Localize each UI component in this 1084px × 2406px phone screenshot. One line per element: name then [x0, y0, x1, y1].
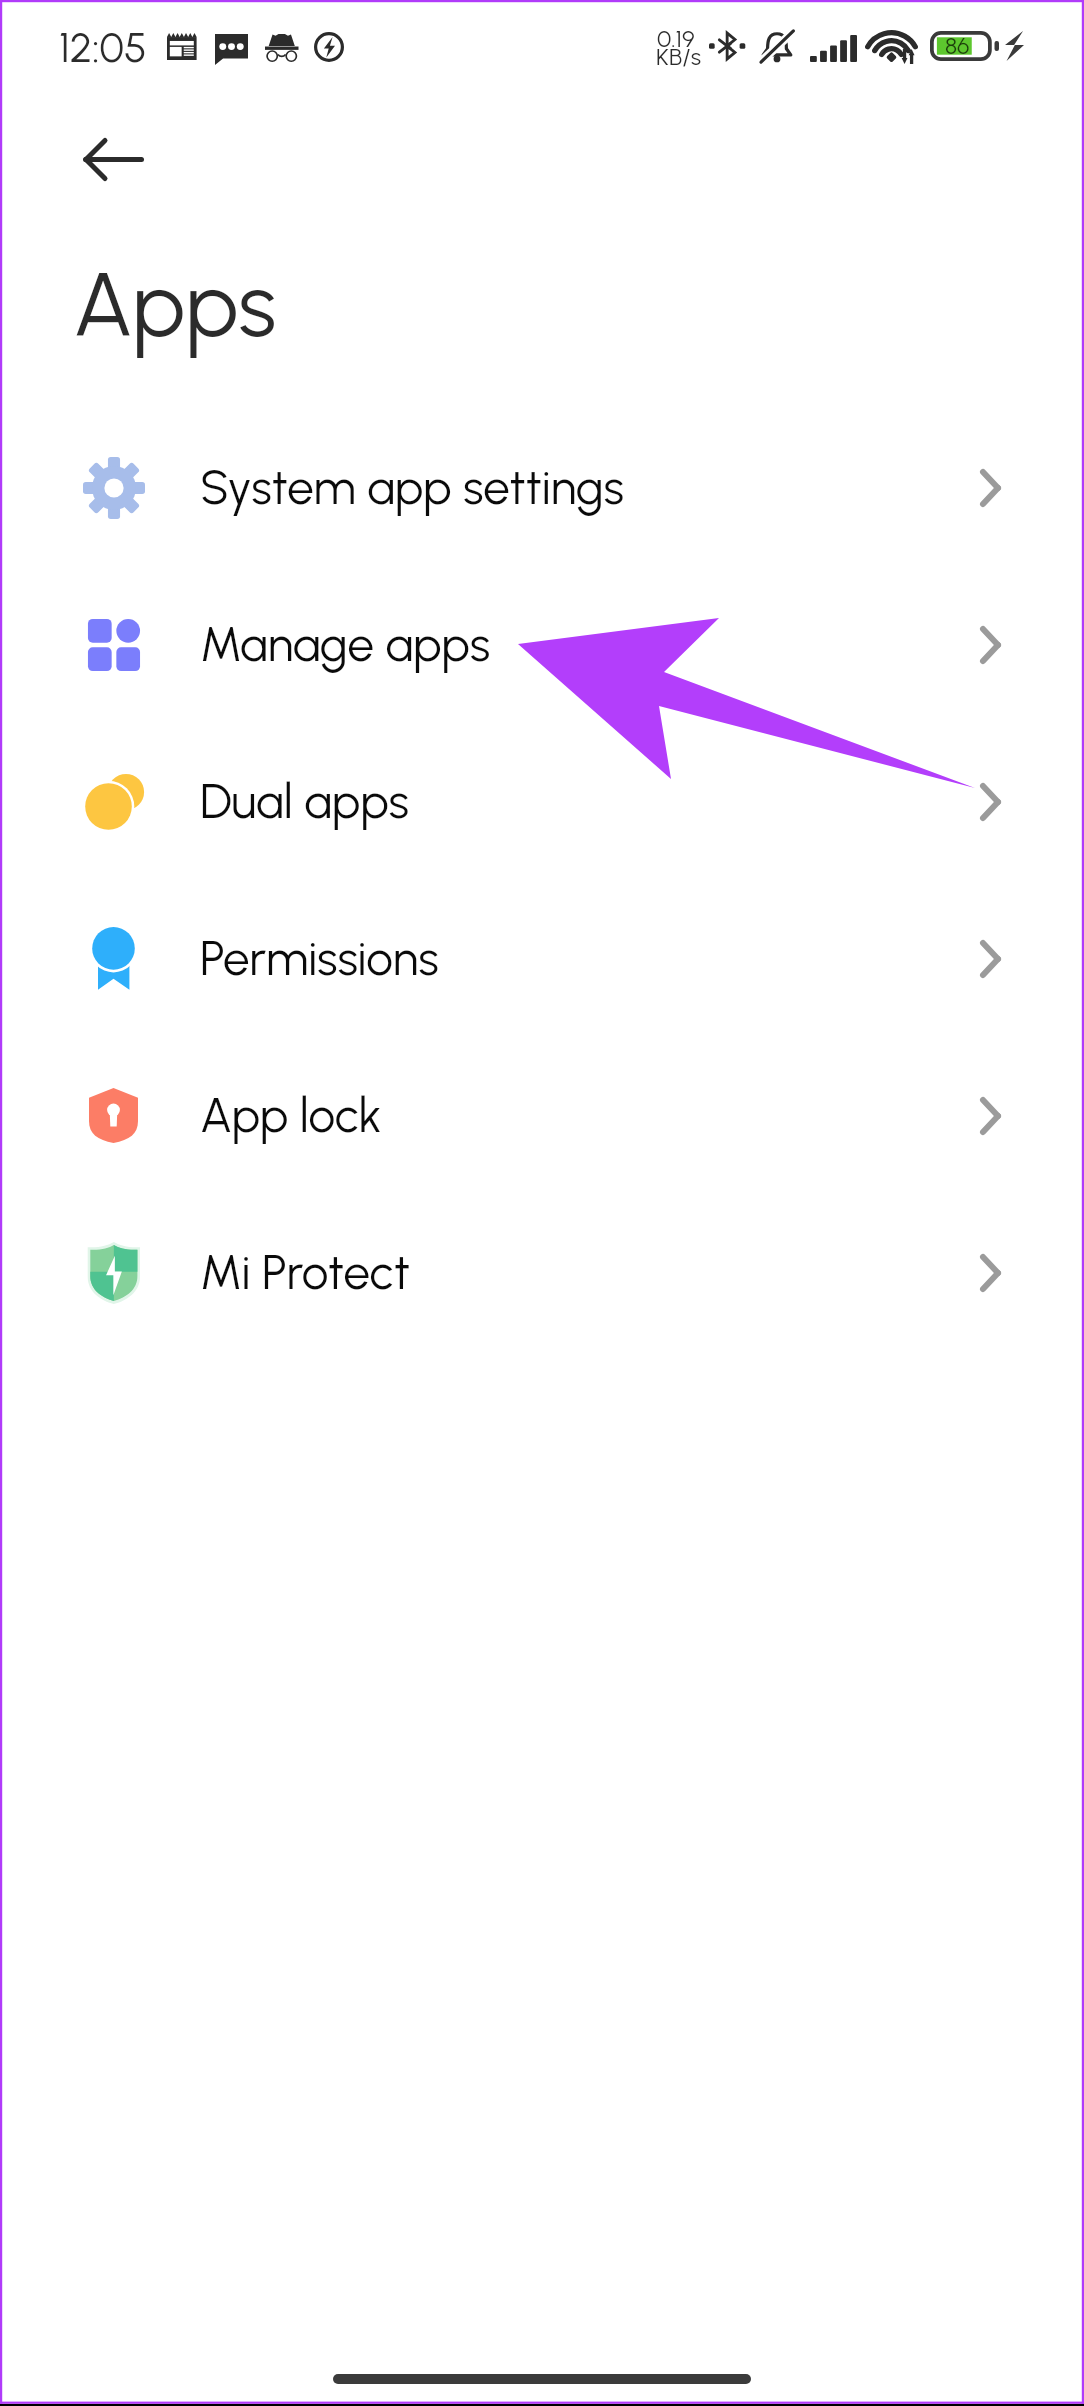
- staticText: Mi Protect: [200, 1244, 411, 1301]
- button[interactable]: Back: [53, 119, 155, 201]
- staticText: System app settings: [200, 459, 625, 516]
- staticText: Manage apps: [200, 616, 491, 673]
- staticText: Permissions: [200, 930, 439, 987]
- button[interactable]: Dual apps: [0, 723, 1084, 880]
- staticText: Dual apps: [200, 773, 409, 830]
- staticText: App lock: [200, 1087, 382, 1144]
- staticText: Apps: [73, 251, 277, 358]
- staticText: KB/s: [656, 42, 702, 71]
- button[interactable]: Mi Protect: [0, 1194, 1084, 1351]
- button[interactable]: App lock: [0, 1037, 1084, 1194]
- staticText: 12:05: [59, 23, 147, 72]
- staticText: 86: [945, 32, 970, 60]
- button[interactable]: System app settings: [0, 409, 1084, 566]
- staticText: 0.19: [657, 24, 695, 53]
- button[interactable]: Permissions: [0, 880, 1084, 1037]
- button[interactable]: Manage apps: [0, 566, 1084, 723]
